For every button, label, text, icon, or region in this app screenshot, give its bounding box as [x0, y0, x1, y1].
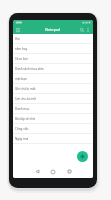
- staticText: Danh sách mua sắm: [15, 67, 44, 71]
- button[interactable]: [32, 167, 42, 176]
- button[interactable]: Bài tập về nhà: [13, 114, 93, 124]
- staticText: Notepad: [45, 27, 61, 32]
- staticText: Công việc: [15, 127, 29, 131]
- button[interactable]: nấm hay: [13, 44, 93, 54]
- staticText: Sẽ se bợi: [15, 57, 28, 61]
- button[interactable]: [48, 167, 58, 176]
- staticText: Hai: [15, 37, 20, 41]
- button[interactable]: Ghi chú bị mất: [13, 84, 93, 94]
- button[interactable]: [79, 27, 85, 33]
- button[interactable]: Công việc: [13, 124, 93, 134]
- staticText: mặt bạn: [15, 77, 27, 81]
- button[interactable]: Hai: [13, 34, 93, 44]
- button[interactable]: Sơn chu bị mệt: [13, 94, 93, 104]
- button[interactable]: [14, 26, 21, 33]
- staticText: Ngày mai: [15, 137, 29, 141]
- button[interactable]: Ngày mai: [13, 134, 93, 144]
- staticText: Bài tập về nhà: [15, 117, 35, 121]
- button[interactable]: mặt bạn: [13, 74, 93, 84]
- button[interactable]: [64, 167, 74, 176]
- button[interactable]: [77, 151, 88, 162]
- staticText: Ghi chú bị mất: [15, 87, 36, 91]
- staticText: Danh mục: [15, 107, 30, 111]
- button[interactable]: Sẽ se bợi: [13, 54, 93, 64]
- button[interactable]: Danh sách mua sắm: [13, 64, 93, 74]
- button[interactable]: Danh mục: [13, 104, 93, 114]
- staticText: Sơn chu bị mệt: [15, 97, 37, 101]
- button[interactable]: [85, 27, 91, 33]
- staticText: nấm hay: [15, 47, 28, 51]
